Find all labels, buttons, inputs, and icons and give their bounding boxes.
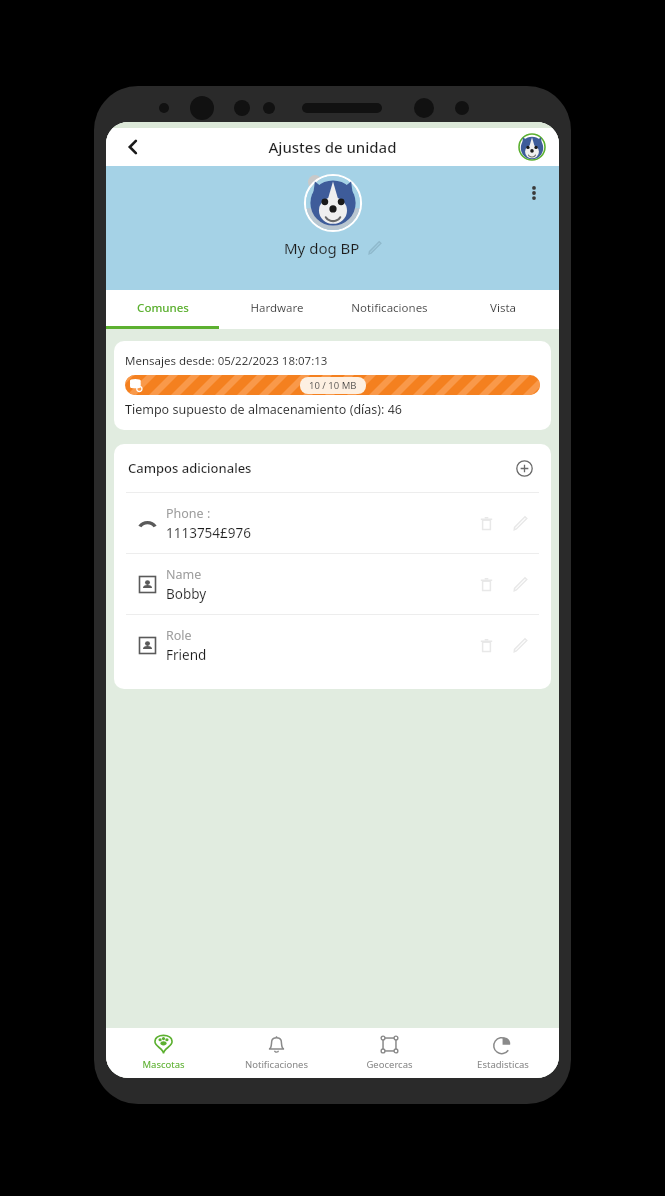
button[interactable]: Back (118, 132, 148, 162)
staticText: Notificaciones (245, 1058, 308, 1071)
button[interactable]: Notificaciones (220, 1028, 333, 1078)
button[interactable]: Edit (503, 506, 537, 540)
button[interactable]: Name (114, 554, 551, 614)
button[interactable]: Estadisticas (446, 1028, 559, 1078)
button[interactable]: More options (519, 178, 549, 208)
staticText: Phone : (166, 505, 211, 522)
staticText: Mascotas (142, 1058, 185, 1071)
staticText: 10 / 10 MB (309, 379, 357, 392)
staticText: 1113754£976 (166, 524, 251, 542)
staticText: Campos adicionales (128, 459, 511, 477)
staticText: Hardware (250, 300, 304, 316)
button[interactable]: Notificaciones (333, 290, 446, 326)
button[interactable]: Delete (469, 567, 503, 601)
staticText: Vista (490, 300, 516, 316)
staticText: Name (166, 566, 202, 583)
staticText: Estadisticas (477, 1058, 529, 1071)
button[interactable]: Mascotas (106, 1028, 220, 1078)
button[interactable]: Phone : (114, 493, 551, 553)
staticText: Role (166, 627, 192, 644)
staticText: Geocercas (366, 1058, 413, 1071)
other: Edit name (368, 241, 382, 255)
button[interactable]: Delete (469, 506, 503, 540)
button[interactable]: Role (114, 615, 551, 675)
button[interactable]: Delete (469, 628, 503, 662)
button[interactable]: My dog BP (284, 238, 382, 258)
staticText: Ajustes de unidad (148, 137, 517, 157)
button[interactable]: Add field (511, 455, 537, 481)
button[interactable]: Mensajes desde: 05/22/2023 18:07:13 (114, 341, 551, 430)
staticText: My dog BP (284, 238, 360, 258)
button[interactable]: Campos adicionales (114, 444, 551, 492)
button[interactable]: Geocercas (333, 1028, 446, 1078)
staticText: Tiempo supuesto de almacenamiento (días)… (125, 401, 402, 418)
staticText: Notificaciones (351, 300, 428, 316)
button[interactable]: Profile (517, 132, 547, 162)
staticText: Bobby (166, 585, 207, 603)
staticText: Mensajes desde: 05/22/2023 18:07:13 (125, 353, 328, 369)
staticText: Comunes (137, 300, 189, 316)
button[interactable]: Edit (503, 628, 537, 662)
button[interactable]: Edit (503, 567, 537, 601)
button[interactable]: Comunes (106, 290, 220, 326)
button[interactable]: Hardware (220, 290, 333, 326)
button[interactable]: Vista (446, 290, 559, 326)
staticText: Friend (166, 646, 207, 664)
